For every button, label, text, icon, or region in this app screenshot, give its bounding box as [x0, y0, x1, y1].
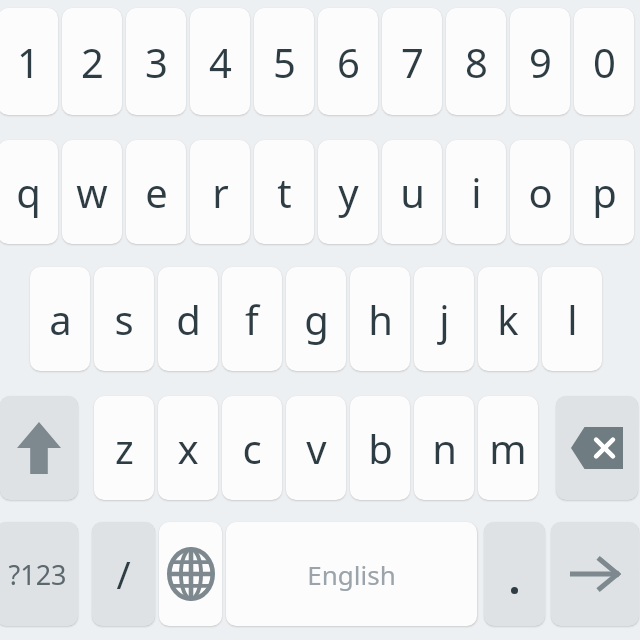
button[interactable]: 8 [446, 8, 506, 115]
button[interactable]: 6 [318, 8, 378, 115]
button[interactable]: Enter [551, 522, 639, 626]
staticText: / [116, 548, 131, 600]
button[interactable]: b [350, 396, 410, 500]
staticText: y [338, 165, 359, 219]
button[interactable]: ?123 [0, 522, 78, 626]
button[interactable]: English [226, 522, 477, 626]
staticText: x [177, 421, 199, 475]
button[interactable]: n [414, 396, 474, 500]
button[interactable]: f [222, 267, 282, 371]
staticText: k [497, 292, 519, 346]
staticText: r [212, 165, 229, 219]
button[interactable]: m [478, 396, 538, 500]
staticText: 1 [17, 35, 40, 89]
button[interactable]: Shift [0, 396, 78, 500]
button[interactable]: Backspace [556, 396, 638, 500]
staticText: 4 [209, 35, 232, 89]
button[interactable]: r [190, 140, 250, 244]
button[interactable]: g [286, 267, 346, 371]
button[interactable]: Change language [159, 522, 222, 626]
button[interactable] [484, 522, 545, 626]
staticText: English [307, 557, 396, 592]
button[interactable]: a [30, 267, 90, 371]
staticText: o [528, 165, 553, 219]
button[interactable]: t [254, 140, 314, 244]
button[interactable]: v [286, 396, 346, 500]
button[interactable]: 9 [510, 8, 570, 115]
staticText: j [439, 292, 450, 346]
button[interactable]: u [382, 140, 442, 244]
staticText: 9 [529, 35, 552, 89]
staticText: w [76, 165, 108, 219]
button[interactable]: c [222, 396, 282, 500]
staticText: 8 [465, 35, 488, 89]
staticText: s [114, 292, 134, 346]
button[interactable]: l [542, 267, 602, 371]
staticText: g [304, 292, 329, 346]
button[interactable]: j [414, 267, 474, 371]
button[interactable]: e [126, 140, 186, 244]
staticText: t [277, 165, 292, 219]
staticText: p [592, 165, 617, 219]
staticText: i [471, 165, 482, 219]
staticText: 0 [593, 35, 616, 89]
staticText: 6 [337, 35, 360, 89]
staticText: v [306, 421, 327, 475]
button[interactable]: 0 [574, 8, 634, 115]
button[interactable]: 5 [254, 8, 314, 115]
button[interactable]: 3 [126, 8, 186, 115]
button[interactable]: h [350, 267, 410, 371]
staticText: z [115, 421, 134, 475]
staticText: a [49, 292, 72, 346]
staticText: u [400, 165, 425, 219]
staticText: 3 [145, 35, 168, 89]
button[interactable]: d [158, 267, 218, 371]
button[interactable]: z [94, 396, 154, 500]
button[interactable]: i [446, 140, 506, 244]
staticText: m [489, 421, 527, 475]
staticText: c [242, 421, 262, 475]
staticText: e [145, 165, 168, 219]
button[interactable]: o [510, 140, 570, 244]
button[interactable]: p [574, 140, 634, 244]
button[interactable]: x [158, 396, 218, 500]
staticText: 2 [81, 35, 104, 89]
button[interactable]: 1 [0, 8, 58, 115]
button[interactable]: 7 [382, 8, 442, 115]
staticText: l [567, 292, 578, 346]
button[interactable]: 4 [190, 8, 250, 115]
button[interactable]: y [318, 140, 378, 244]
button[interactable]: / [92, 522, 155, 626]
staticText: b [368, 421, 393, 475]
staticText: h [368, 292, 393, 346]
staticText: 7 [401, 35, 424, 89]
staticText: 5 [273, 35, 296, 89]
button[interactable]: 2 [62, 8, 122, 115]
button[interactable]: s [94, 267, 154, 371]
button[interactable]: q [0, 140, 58, 244]
staticText: d [176, 292, 201, 346]
staticText: ?123 [8, 556, 67, 593]
staticText: q [16, 165, 41, 219]
button[interactable]: k [478, 267, 538, 371]
button[interactable]: w [62, 140, 122, 244]
staticText: n [432, 421, 457, 475]
staticText: f [245, 292, 259, 346]
